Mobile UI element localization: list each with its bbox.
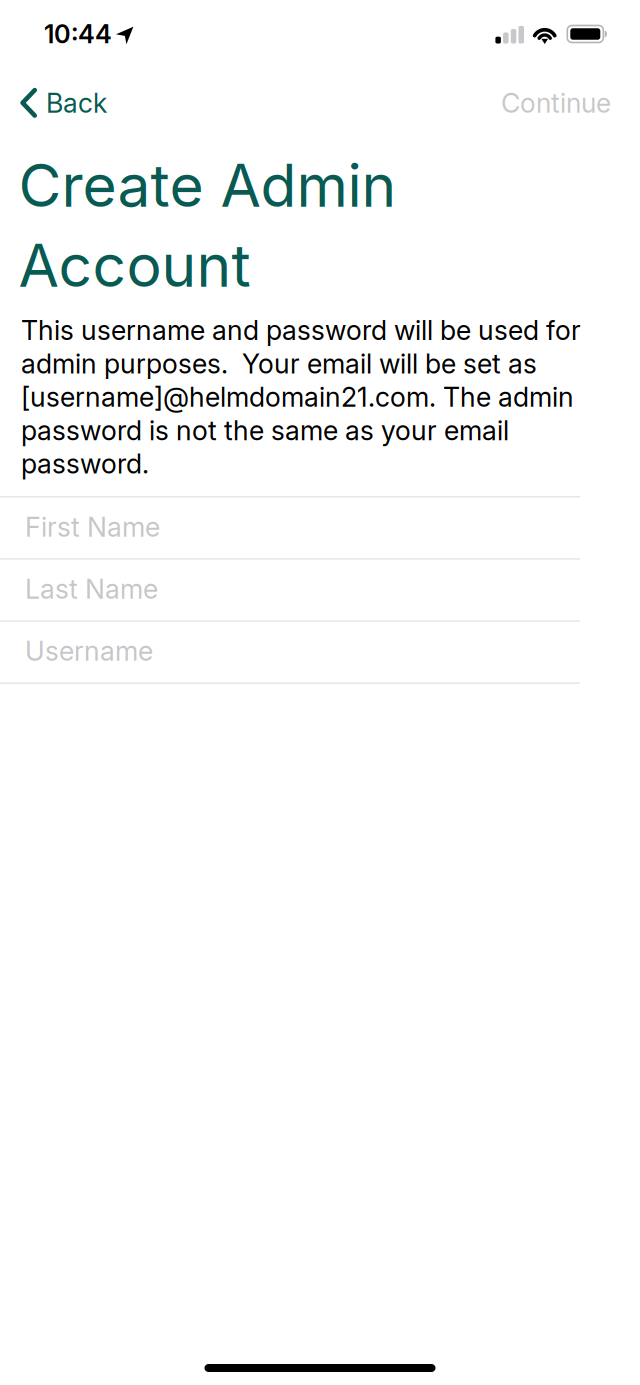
staticText: First Name xyxy=(25,511,160,543)
button[interactable]: First Name xyxy=(0,497,640,560)
staticText: Back xyxy=(46,87,107,119)
button[interactable]: Username xyxy=(0,622,640,684)
staticText: Last Name xyxy=(25,573,158,605)
staticText: 10:44 xyxy=(44,19,112,49)
staticText: Continue xyxy=(501,87,611,119)
staticText: Create Admin Account xyxy=(18,150,396,301)
button[interactable]: Continue xyxy=(487,78,640,128)
staticText: This username and password will be used … xyxy=(21,314,581,480)
staticText: Username xyxy=(25,635,153,667)
button[interactable]: Back xyxy=(0,78,121,128)
button[interactable]: Last Name xyxy=(0,560,640,622)
